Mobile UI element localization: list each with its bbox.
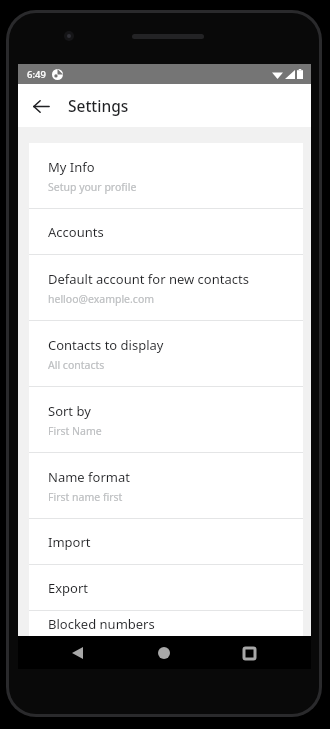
button[interactable]: Recent apps: [236, 640, 262, 666]
staticText: Accounts: [48, 223, 104, 241]
staticText: Default account for new contacts: [48, 270, 249, 288]
staticText: First Name: [48, 424, 102, 438]
button[interactable]: Export: [29, 565, 303, 610]
button[interactable]: Default account for new contacts: [29, 255, 303, 320]
staticText: Name format: [48, 468, 130, 486]
button[interactable]: Accounts: [29, 209, 303, 254]
staticText: Sort by: [48, 402, 91, 420]
button[interactable]: Import: [29, 519, 303, 564]
button[interactable]: My Info: [29, 143, 303, 208]
staticText: First name first: [48, 490, 123, 504]
button[interactable]: Back: [24, 89, 58, 123]
staticText: Contacts to display: [48, 336, 164, 354]
button[interactable]: Contacts to display: [29, 321, 303, 386]
staticText: Blocked numbers: [48, 615, 155, 633]
staticText: My Info: [48, 158, 95, 176]
staticText: helloo@example.com: [48, 292, 155, 306]
button[interactable]: Blocked numbers: [29, 611, 303, 636]
staticText: Import: [48, 533, 91, 551]
staticText: Export: [48, 579, 89, 597]
staticText: All contacts: [48, 358, 105, 372]
button[interactable]: Name format: [29, 453, 303, 518]
staticText: Setup your profile: [48, 180, 137, 194]
button[interactable]: Home: [151, 640, 177, 666]
staticText: 6:49: [27, 68, 46, 81]
button[interactable]: Back: [64, 640, 90, 666]
staticText: Settings: [68, 95, 129, 116]
button[interactable]: Sort by: [29, 387, 303, 452]
